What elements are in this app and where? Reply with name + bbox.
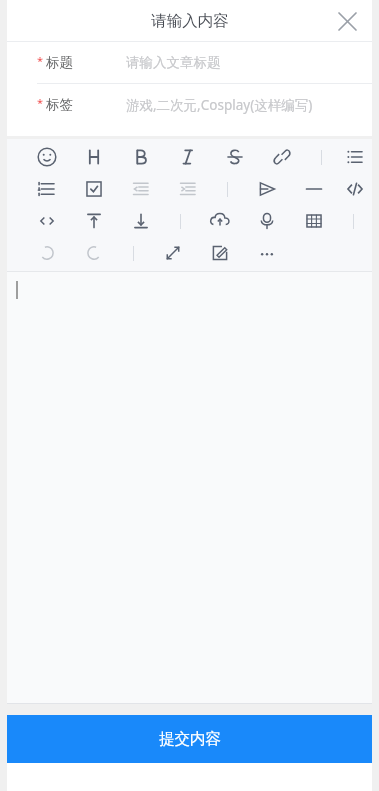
staticText: 请输入内容 xyxy=(151,11,229,31)
button[interactable]: 更多 xyxy=(243,237,290,269)
button[interactable]: 标题 xyxy=(70,141,117,173)
button[interactable]: 分割线 xyxy=(290,173,337,205)
button[interactable]: 关闭 xyxy=(330,4,364,38)
staticText: 游戏,二次元,Cosplay(这样编写) xyxy=(126,96,313,114)
button[interactable]: 撤销 xyxy=(23,237,70,269)
button[interactable]: 全屏 xyxy=(149,237,196,269)
button[interactable]: 表情 xyxy=(23,141,70,173)
button[interactable]: 编辑 xyxy=(196,237,243,269)
button[interactable]: 源码 xyxy=(23,205,70,237)
staticText: * xyxy=(37,53,44,68)
button[interactable]: 无序列表 xyxy=(337,141,372,173)
staticText: 标题 xyxy=(46,54,73,71)
button[interactable]: 重做 xyxy=(70,237,117,269)
staticText: 请输入文章标题 xyxy=(126,54,221,71)
button[interactable]: 链接 xyxy=(258,141,305,173)
button[interactable]: 提交内容 xyxy=(7,715,372,763)
button[interactable]: 表格 xyxy=(290,205,337,237)
button[interactable]: 斜体 xyxy=(164,141,211,173)
button[interactable]: 加粗 xyxy=(117,141,164,173)
staticText: * xyxy=(37,95,44,110)
button[interactable]: 上传 xyxy=(196,205,243,237)
button[interactable]: 删除线 xyxy=(211,141,258,173)
button[interactable]: 增加缩进 xyxy=(164,173,211,205)
button[interactable]: * xyxy=(7,84,372,125)
button[interactable]: 语音 xyxy=(243,205,290,237)
button[interactable]: 代码 xyxy=(337,173,372,205)
staticText: 提交内容 xyxy=(159,729,221,749)
button[interactable]: 置底 xyxy=(117,205,164,237)
button[interactable]: 置顶 xyxy=(70,205,117,237)
staticText: 标签 xyxy=(46,96,73,113)
button[interactable]: 有序列表 xyxy=(23,173,70,205)
button[interactable]: 减少缩进 xyxy=(117,173,164,205)
button[interactable]: 待办 xyxy=(70,173,117,205)
button[interactable]: 引用 xyxy=(243,173,290,205)
button[interactable]: * xyxy=(7,42,372,84)
